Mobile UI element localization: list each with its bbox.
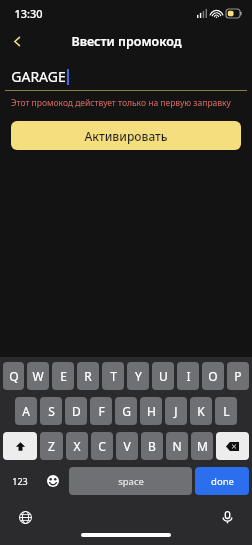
staticText: W — [32, 368, 44, 384]
staticText: D — [72, 403, 81, 419]
button[interactable]: R — [77, 362, 99, 390]
staticText: J — [174, 403, 178, 419]
button[interactable]: done — [195, 467, 249, 495]
button[interactable]: Shift — [3, 432, 37, 460]
button[interactable]: Y — [127, 362, 149, 390]
button[interactable]: Backspace — [216, 432, 249, 460]
button[interactable]: U — [152, 362, 174, 390]
button[interactable]: J — [165, 397, 187, 425]
button[interactable]: H — [140, 397, 162, 425]
button[interactable]: T — [102, 362, 124, 390]
staticText: R — [84, 368, 92, 384]
button[interactable]: G — [115, 397, 137, 425]
button[interactable]: B — [141, 432, 163, 460]
staticText: T — [110, 368, 117, 384]
staticText: Ввести промокод — [71, 33, 182, 50]
button[interactable]: I — [177, 362, 199, 390]
staticText: B — [148, 438, 156, 454]
staticText: I — [186, 368, 191, 384]
button[interactable]: Change language — [16, 508, 34, 526]
button[interactable]: 123 — [3, 467, 37, 495]
staticText: GARAGE — [11, 67, 66, 86]
staticText: H — [147, 403, 156, 419]
button[interactable]: W — [27, 362, 49, 390]
staticText: done — [211, 475, 234, 488]
button[interactable]: Q — [3, 362, 24, 390]
button[interactable]: K — [190, 397, 212, 425]
staticText: O — [208, 368, 218, 384]
staticText: C — [98, 438, 106, 454]
button[interactable]: GARAGE — [11, 64, 241, 88]
staticText: V — [123, 438, 131, 454]
button[interactable]: Voice input — [218, 508, 236, 526]
button[interactable]: V — [116, 432, 138, 460]
button[interactable]: C — [91, 432, 113, 460]
staticText: 13:30 — [14, 6, 43, 21]
staticText: S — [48, 403, 55, 419]
staticText: N — [172, 438, 182, 454]
button[interactable]: S — [40, 397, 62, 425]
button[interactable]: F — [90, 397, 112, 425]
button[interactable]: Emoji — [40, 467, 66, 495]
button[interactable]: M — [191, 432, 213, 460]
staticText: Этот промокод действует только на первую… — [11, 97, 231, 109]
staticText: Q — [9, 368, 19, 384]
button[interactable]: P — [227, 362, 249, 390]
button[interactable]: A — [15, 397, 37, 425]
staticText: L — [223, 403, 230, 419]
button[interactable]: X — [66, 432, 88, 460]
staticText: X — [73, 438, 81, 454]
staticText: G — [122, 403, 131, 419]
staticText: F — [98, 403, 105, 419]
staticText: P — [234, 368, 242, 384]
button[interactable]: E — [52, 362, 74, 390]
button[interactable]: Z — [40, 432, 63, 460]
staticText: K — [197, 403, 205, 419]
button[interactable]: O — [202, 362, 224, 390]
button[interactable]: Активировать — [11, 121, 241, 150]
staticText: A — [22, 403, 30, 419]
staticText: Z — [48, 438, 55, 454]
staticText: U — [159, 368, 168, 384]
button[interactable]: Back — [0, 26, 34, 56]
staticText: Y — [135, 368, 142, 384]
staticText: E — [60, 368, 67, 384]
staticText: space — [118, 475, 144, 488]
button[interactable]: L — [215, 397, 237, 425]
staticText: 123 — [12, 475, 28, 487]
staticText: M — [197, 438, 208, 454]
button[interactable]: N — [166, 432, 188, 460]
staticText: Активировать — [84, 128, 168, 144]
button[interactable]: space — [69, 467, 192, 495]
button[interactable]: D — [65, 397, 87, 425]
